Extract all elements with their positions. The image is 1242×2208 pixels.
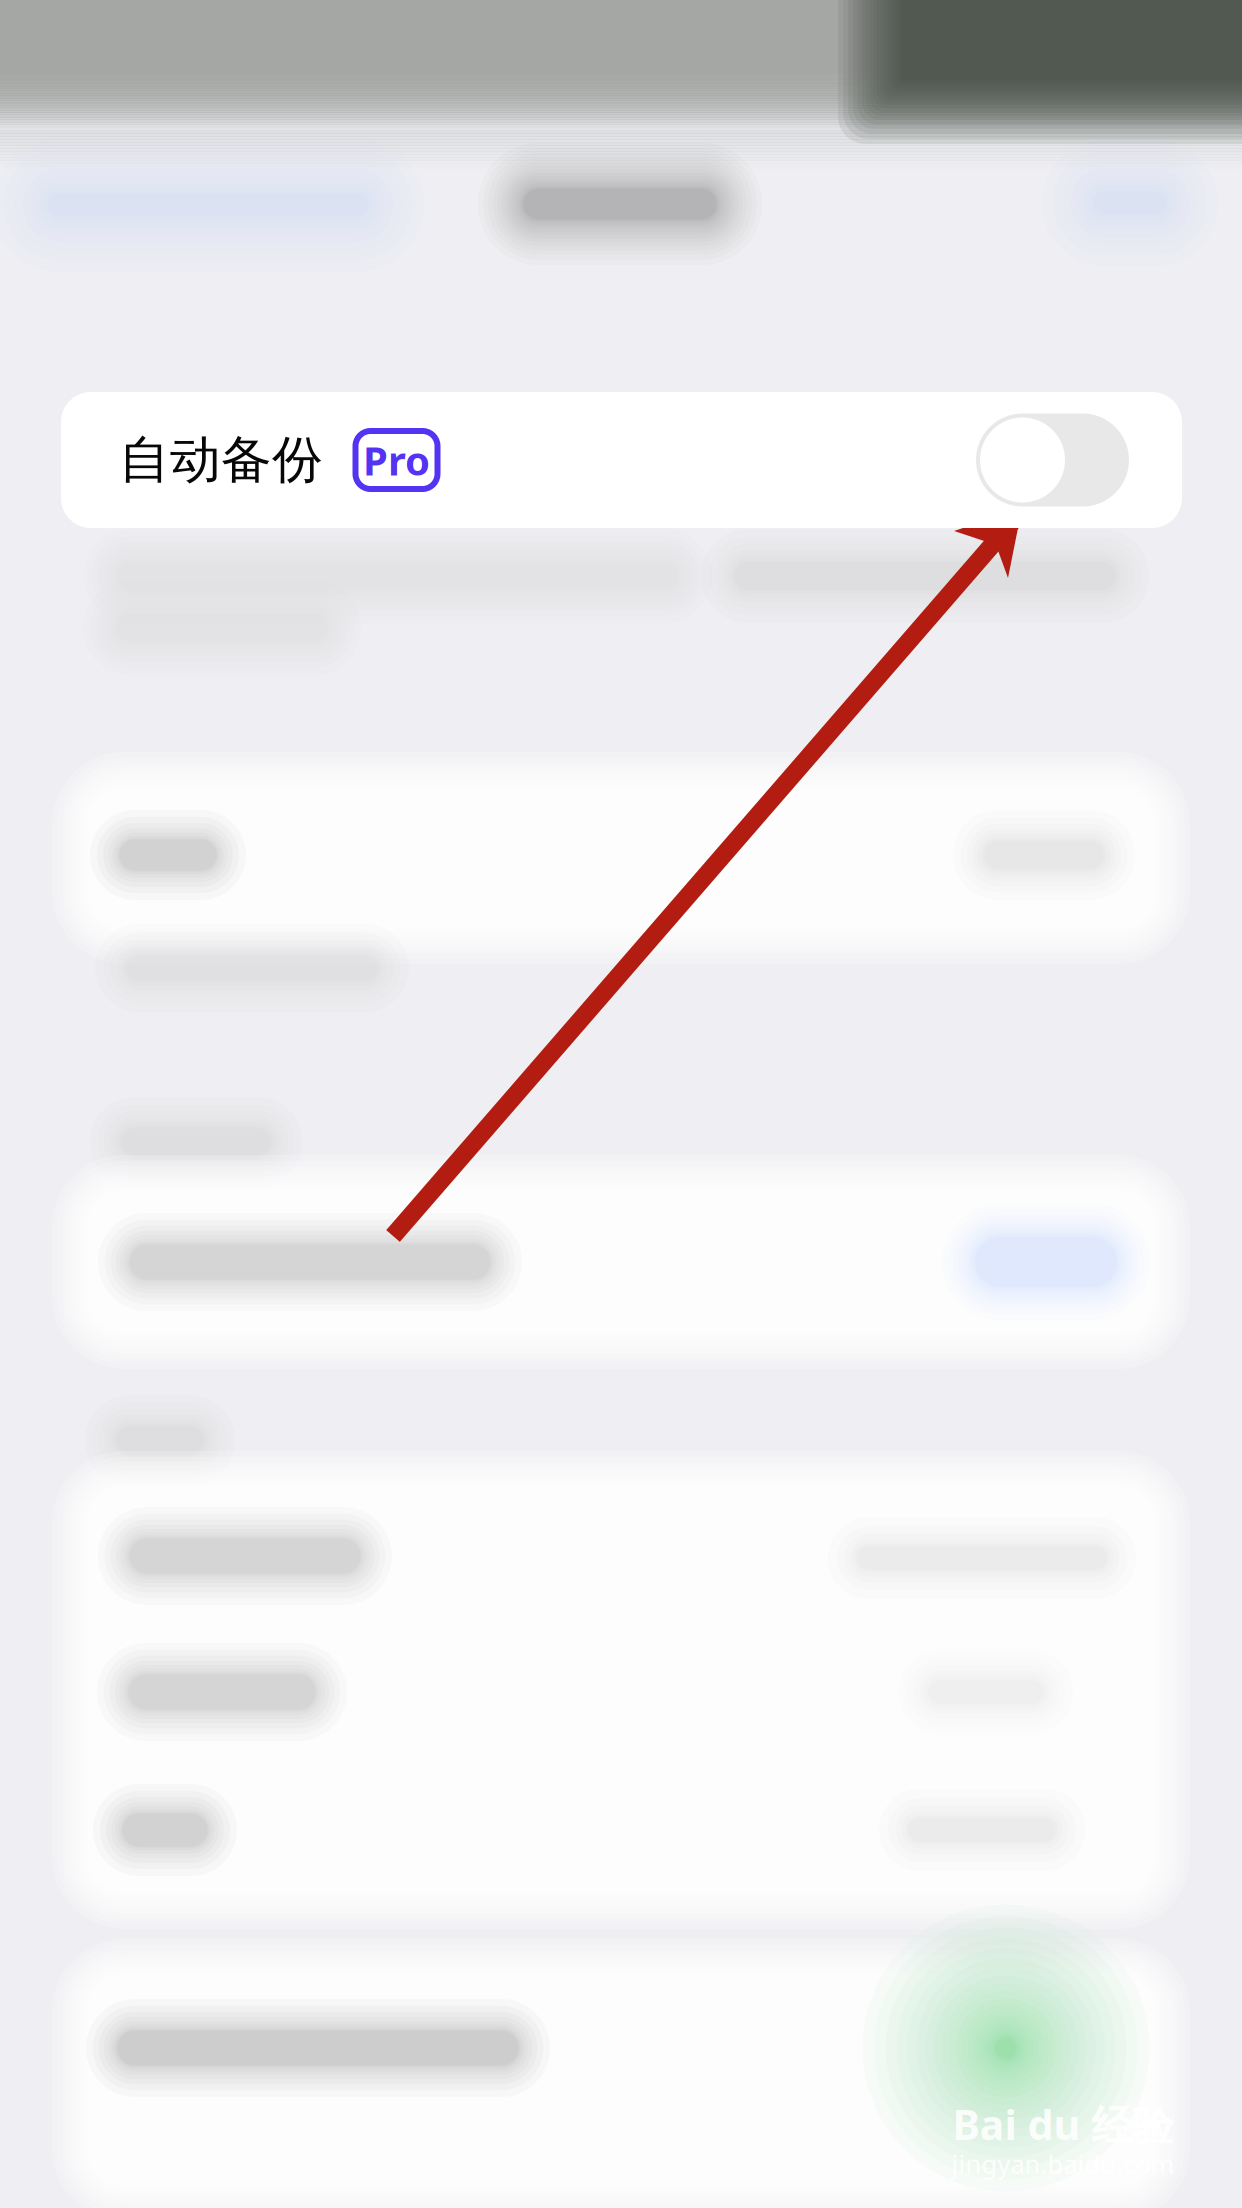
staticText: Bai du 经验 — [952, 2096, 1173, 2151]
staticText: Pro — [363, 433, 430, 486]
staticText: jingyan.baidu.com — [951, 2147, 1174, 2181]
button[interactable]: 自动备份 — [61, 392, 1182, 528]
staticText: 自动备份 — [119, 429, 323, 491]
